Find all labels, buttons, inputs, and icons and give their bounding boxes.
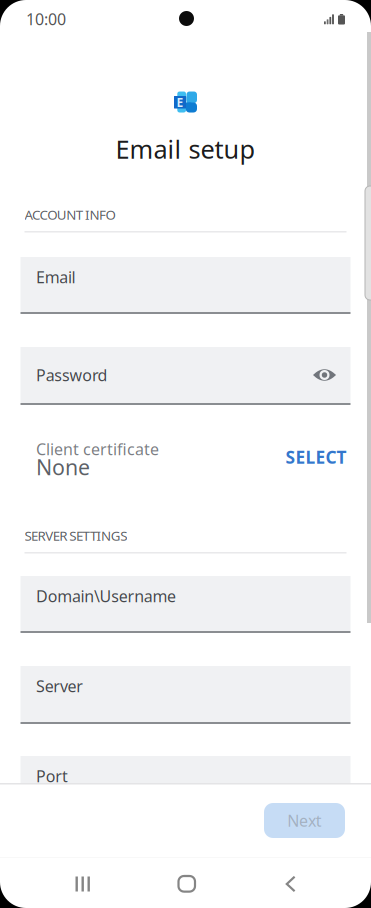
button[interactable]: Recent apps (50, 858, 116, 908)
staticText: None (36, 453, 90, 481)
staticText: 10:00 (26, 8, 66, 30)
staticText: Password (36, 364, 108, 386)
staticText: E (176, 94, 183, 110)
staticText: Port (36, 765, 68, 787)
staticText: Client certificate (36, 438, 159, 460)
button[interactable]: Home (154, 858, 220, 908)
button[interactable]: SELECT (285, 440, 347, 474)
staticText: Domain\Username (36, 585, 176, 607)
staticText: ACCOUNT INFO (24, 206, 115, 223)
staticText: Email (36, 266, 76, 288)
staticText: Server (36, 675, 83, 697)
staticText: Email setup (115, 132, 255, 166)
staticText: Next (287, 810, 322, 831)
staticText: SERVER SETTINGS (24, 527, 127, 544)
staticText: SELECT (285, 445, 346, 468)
button[interactable]: Back (260, 858, 326, 908)
button[interactable]: Next (264, 803, 345, 838)
